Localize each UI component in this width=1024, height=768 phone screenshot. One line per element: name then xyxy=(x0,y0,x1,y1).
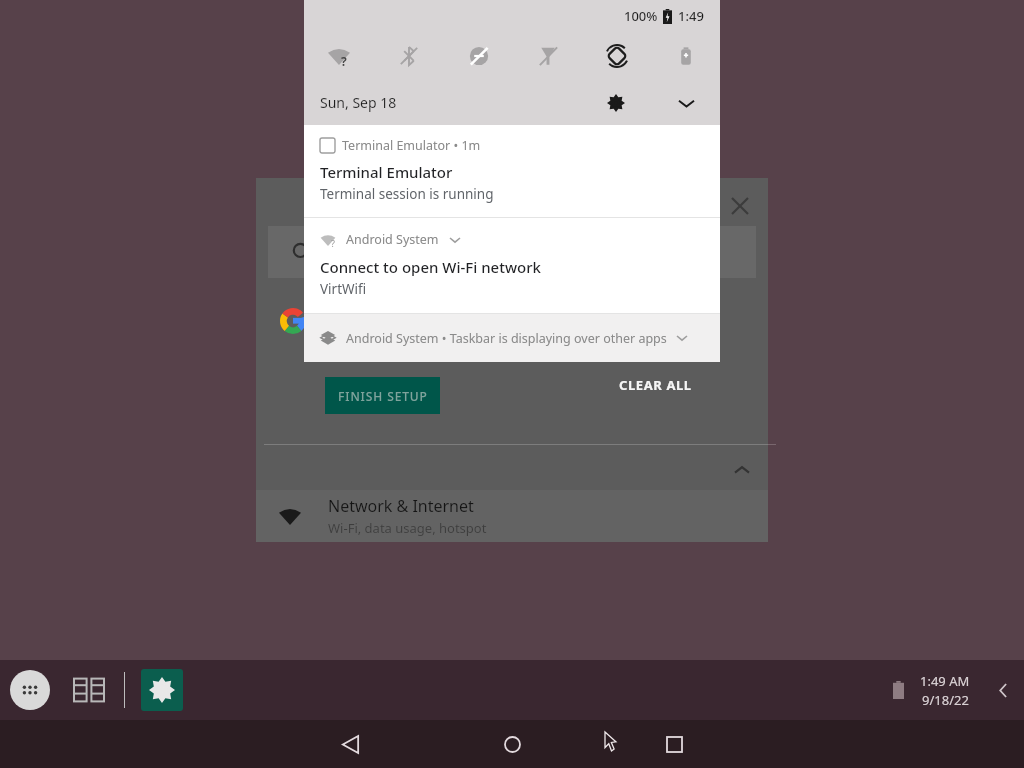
button[interactable]: All apps xyxy=(10,670,50,710)
button[interactable]: ? xyxy=(304,218,720,313)
button[interactable]: Recent apps xyxy=(70,671,108,709)
button[interactable]: Wi-Fi xyxy=(304,32,374,80)
button[interactable]: Flashlight xyxy=(513,32,582,80)
button[interactable]: Expand notification xyxy=(674,330,690,346)
staticText: VirtWifi xyxy=(320,280,367,298)
staticText: Android System xyxy=(346,231,439,248)
staticText: CLEAR ALL xyxy=(619,376,692,394)
staticText: Android System • Taskbar is displaying o… xyxy=(346,330,667,347)
button[interactable]: Expand xyxy=(668,85,704,121)
button[interactable]: Settings xyxy=(598,85,634,121)
button[interactable]: Show hidden icons xyxy=(988,675,1018,705)
button[interactable]: Expand notification xyxy=(447,232,463,248)
button[interactable]: Android System • Taskbar is displaying o… xyxy=(304,314,720,362)
button[interactable]: FINISH SETUP xyxy=(256,290,768,450)
button[interactable] xyxy=(268,226,756,278)
button[interactable]: Terminal Emulator • 1m xyxy=(304,125,720,217)
button[interactable]: CLEAR ALL xyxy=(600,370,710,400)
staticText: 1:49 xyxy=(678,7,704,25)
staticText: Sun, Sep 18 xyxy=(320,93,397,112)
button[interactable]: Auto rotate xyxy=(582,32,651,80)
button[interactable]: Close xyxy=(720,186,760,226)
button[interactable]: FINISH SETUP xyxy=(325,377,440,414)
staticText: Terminal Emulator xyxy=(320,162,453,182)
staticText: Terminal Emulator • 1m xyxy=(342,137,481,154)
button[interactable]: Home xyxy=(482,720,542,768)
staticText: 9/18/22 xyxy=(922,691,969,709)
staticText: Terminal session is running xyxy=(320,185,494,203)
staticText: 100% xyxy=(624,7,658,25)
staticText: Network & Internet xyxy=(328,495,474,517)
button[interactable]: Settings xyxy=(141,669,183,711)
staticText: Connect to open Wi-Fi network xyxy=(320,257,541,277)
staticText: 1:49 AM xyxy=(920,672,970,690)
button[interactable]: Recents xyxy=(644,720,704,768)
button[interactable]: Do not disturb xyxy=(444,32,513,80)
staticText: FINISH SETUP xyxy=(338,388,428,404)
button[interactable]: Back xyxy=(320,720,380,768)
button[interactable]: Collapse xyxy=(728,456,756,484)
button[interactable]: Network & Internet xyxy=(256,490,768,542)
staticText: ? xyxy=(331,237,335,249)
staticText: ? xyxy=(341,53,347,69)
button[interactable]: Bluetooth xyxy=(374,32,444,80)
staticText: Wi-Fi, data usage, hotspot xyxy=(328,519,487,537)
button[interactable]: Battery saver xyxy=(651,32,720,80)
